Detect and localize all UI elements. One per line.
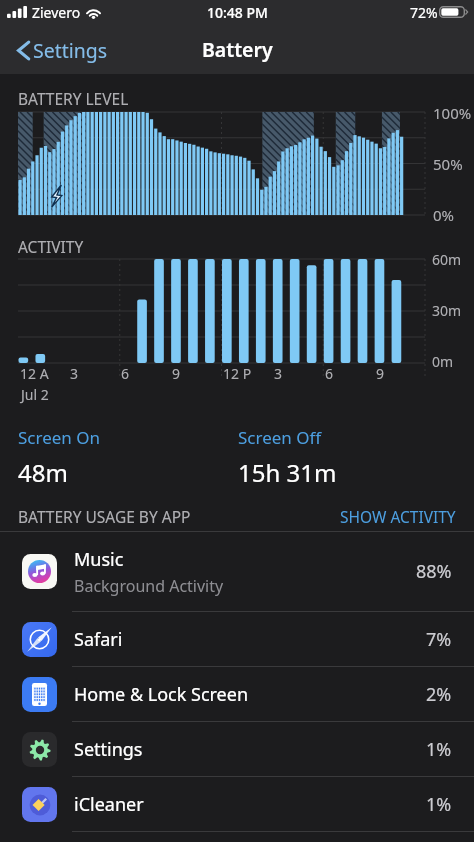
staticText: Battery [202,36,273,63]
staticText: 12 A [20,364,49,383]
staticText: 6 [121,364,130,383]
staticText: 100% [433,103,472,123]
staticText: 3 [274,364,283,383]
staticText: 3 [70,364,79,383]
staticText: SHOW ACTIVITY [340,506,456,527]
staticText: 88% [416,559,452,584]
staticText: 50% [433,154,463,174]
staticText: iCleaner [74,792,144,817]
button[interactable]: iCleaner [0,777,474,832]
staticText: Screen On [18,426,101,449]
staticText: Zievero [32,3,81,22]
staticText: BATTERY USAGE BY APP [18,506,191,527]
staticText: Settings [33,37,108,64]
staticText: 1% [426,737,452,762]
button[interactable]: Music [0,532,474,612]
staticText: Safari [74,627,123,652]
staticText: 10:48 PM [207,3,268,22]
staticText: 6 [325,364,334,383]
staticText: BATTERY LEVEL [18,88,129,109]
staticText: Background Activity [74,575,224,597]
staticText: 1% [426,792,452,817]
staticText: 0% [433,205,455,225]
button[interactable]: Safari [0,612,474,667]
staticText: 2% [426,682,452,707]
staticText: 48m [18,456,68,489]
button[interactable]: Settings [0,722,474,777]
staticText: Screen Off [238,426,322,449]
staticText: Music [74,547,124,572]
staticText: 30m [432,301,462,320]
button[interactable]: Settings [6,34,118,67]
staticText: 60m [432,250,462,269]
staticText: 9 [172,364,181,383]
staticText: ACTIVITY [18,236,84,257]
button[interactable]: Home & Lock Screen [0,667,474,722]
staticText: 9 [376,364,385,383]
staticText: Settings [74,737,143,762]
staticText: Home & Lock Screen [74,682,249,707]
staticText: Jul 2 [21,385,49,404]
staticText: 12 P [223,364,252,383]
button[interactable]: Show activity [340,506,456,527]
staticText: 15h 31m [238,456,337,489]
staticText: 7% [426,627,452,652]
staticText: 72% [410,3,438,22]
staticText: 0m [432,352,454,371]
